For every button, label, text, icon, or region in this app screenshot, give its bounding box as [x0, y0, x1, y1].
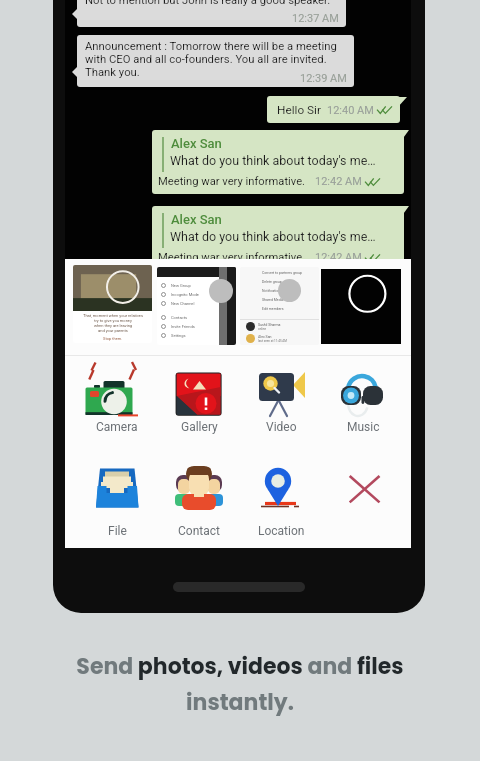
staticText: instantly. — [186, 687, 294, 718]
button[interactable] — [321, 269, 401, 344]
staticText: Meeting war very informative. — [158, 251, 306, 264]
staticText: Sushil Sharma — [258, 323, 281, 327]
button[interactable]: Close — [326, 464, 400, 524]
staticText: 12:39 AM — [300, 72, 347, 85]
staticText: 12:40 AM — [327, 104, 374, 117]
button[interactable]: Gallery — [162, 360, 236, 434]
staticText: Hello Sir — [277, 103, 321, 117]
button[interactable]: That, moment when your relatives try to … — [73, 265, 152, 343]
staticText: Invite Friends — [171, 324, 195, 329]
staticText: Convert to partners group — [262, 271, 302, 275]
staticText: Meeting war very informative. — [158, 175, 306, 188]
staticText: Camera — [96, 420, 138, 434]
button[interactable]: Camera — [80, 360, 154, 434]
button[interactable]: Alex San — [152, 206, 404, 270]
staticText: last seen at 11:45 AM — [258, 339, 287, 343]
staticText: Location — [258, 524, 305, 538]
staticText: Contact — [178, 524, 220, 538]
staticText: Send photos, videos and files — [76, 651, 404, 682]
button[interactable]: Location — [244, 464, 318, 538]
button[interactable]: Convert to partners group — [240, 267, 319, 345]
staticText: That, moment when your relatives try to … — [83, 313, 143, 333]
button[interactable]: Hello Sir — [267, 96, 400, 123]
staticText: Notifications and sounds — [262, 289, 301, 293]
staticText: Delete group — [262, 280, 282, 284]
staticText: Gallery — [181, 420, 218, 434]
button[interactable]: Not to mention but John is really a good… — [77, 0, 346, 27]
staticText: Not to mention but John is really a good… — [85, 0, 331, 7]
staticText: 12:37 AM — [292, 12, 339, 25]
button[interactable]: Video — [244, 360, 318, 434]
button[interactable]: Announcement : Tomorrow there will be a … — [77, 35, 354, 87]
button[interactable]: Contact — [162, 464, 236, 538]
staticText: 12:42 AM — [315, 251, 362, 264]
staticText: File — [108, 524, 127, 538]
staticText: Alex San — [258, 335, 272, 339]
staticText: Video — [266, 420, 297, 434]
staticText: Stop them. — [103, 336, 123, 341]
staticText: Announcement : Tomorrow there will be a … — [85, 40, 337, 79]
button[interactable]: New Group — [157, 267, 236, 345]
button[interactable]: Alex San — [152, 130, 404, 194]
staticText: Edit members — [262, 307, 284, 311]
staticText: What do you think about today's me… — [170, 229, 376, 244]
staticText: What do you think about today's me… — [170, 153, 376, 168]
staticText: Shared Media — [262, 298, 284, 302]
staticText: New Group — [171, 283, 191, 288]
staticText: Alex San — [171, 136, 222, 151]
staticText: Incognito Mode — [171, 292, 199, 297]
staticText: New Channel — [171, 301, 195, 306]
staticText: Music — [347, 420, 380, 434]
staticText: Alex San — [171, 212, 222, 227]
button[interactable]: File — [80, 464, 154, 538]
staticText: 12:42 AM — [315, 175, 362, 188]
staticText: online — [258, 327, 267, 331]
staticText: Settings — [171, 333, 186, 338]
staticText: Contacts — [171, 315, 188, 320]
button[interactable]: Music — [326, 360, 400, 434]
